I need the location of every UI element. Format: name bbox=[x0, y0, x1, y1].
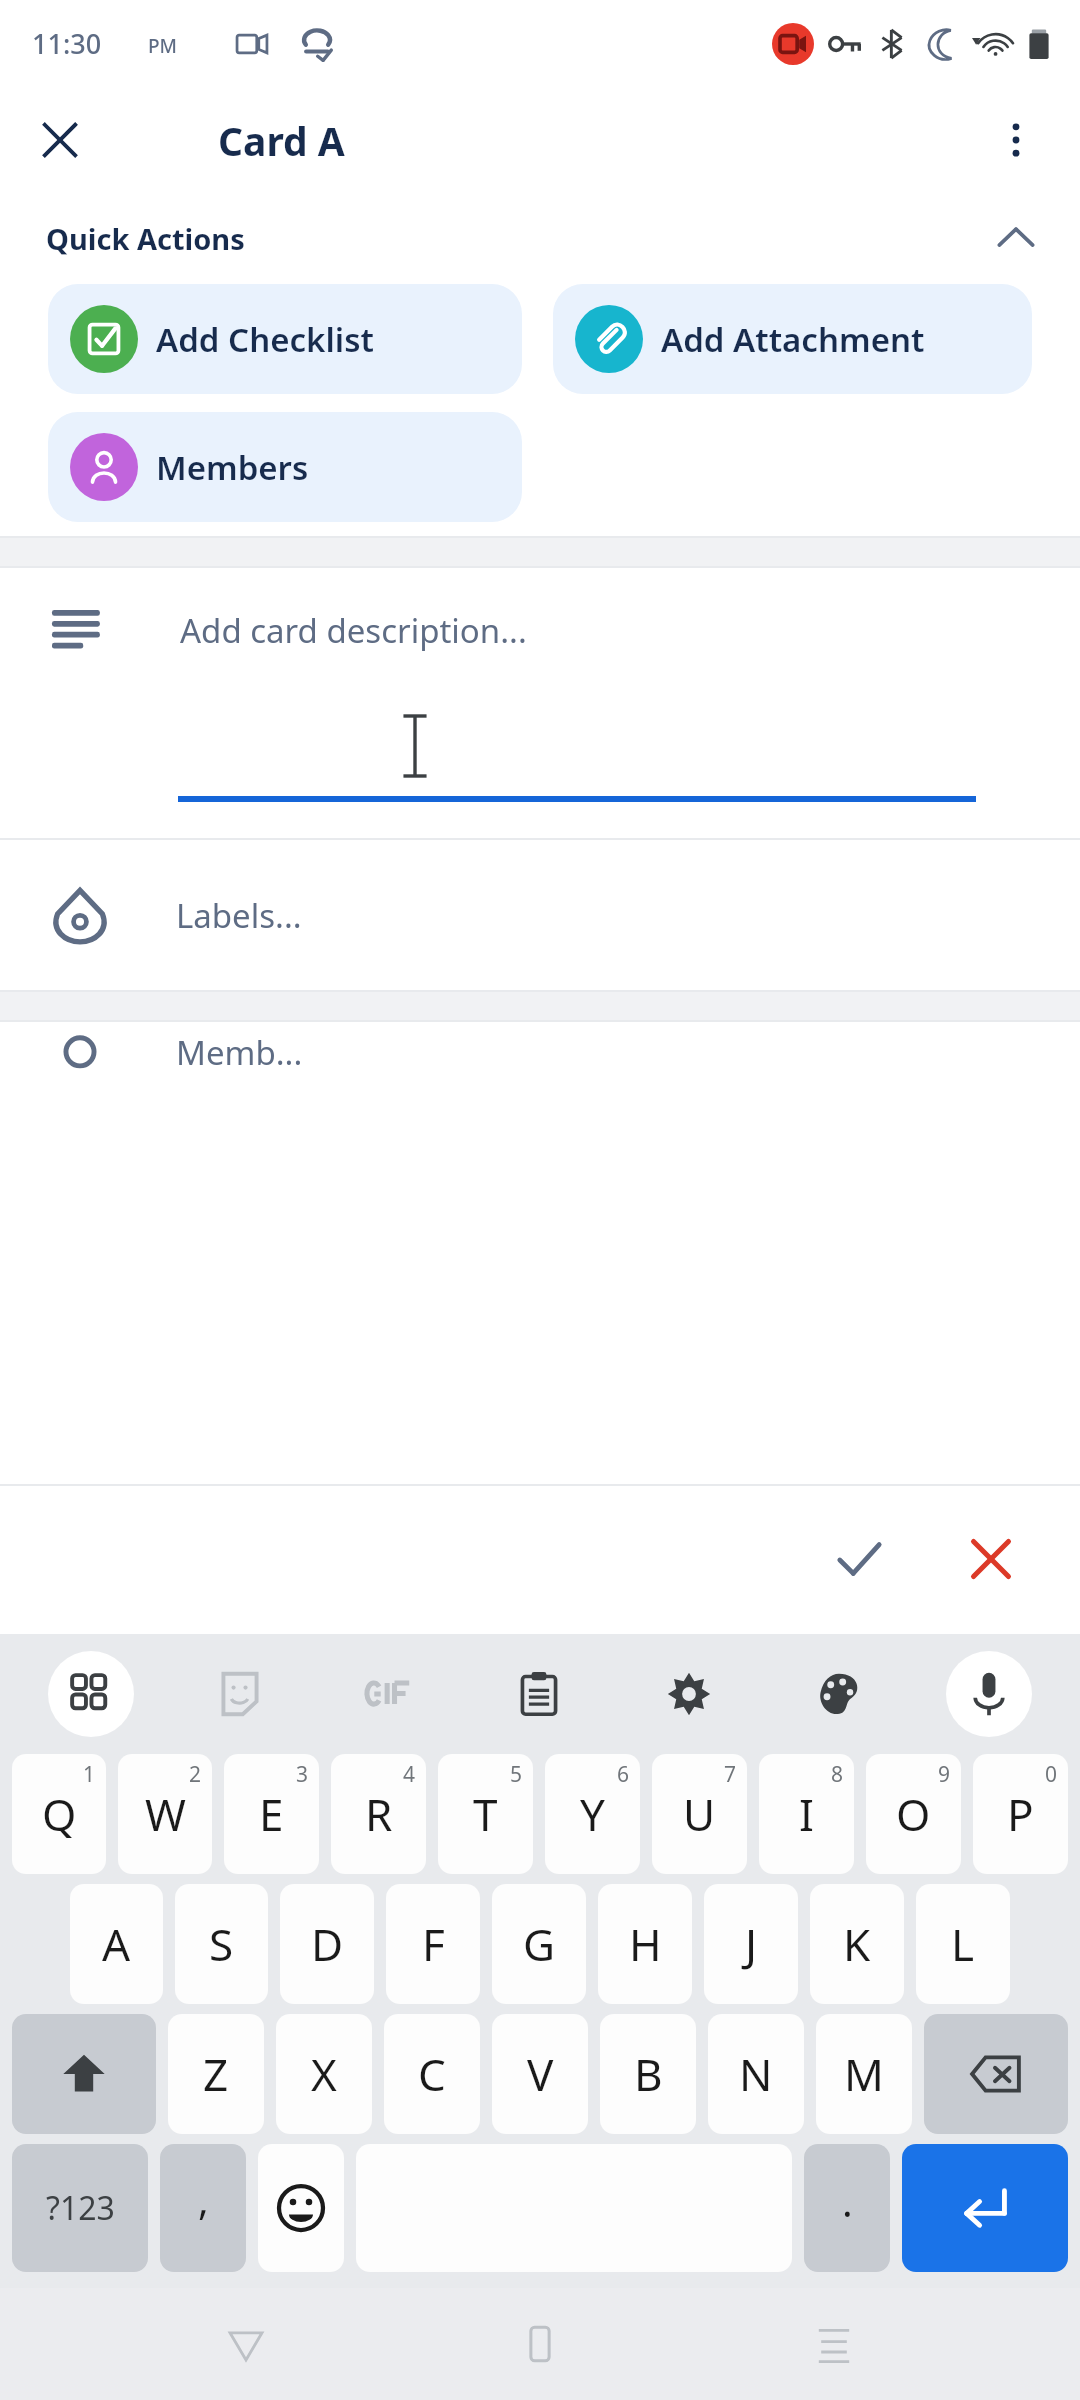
staticText: PM bbox=[148, 33, 178, 59]
staticText: Card A bbox=[218, 114, 345, 167]
button[interactable]: F bbox=[386, 1884, 480, 2004]
button[interactable]: Settings bbox=[646, 1651, 732, 1737]
button[interactable]: N bbox=[708, 2014, 804, 2134]
button[interactable]: K bbox=[810, 1884, 904, 2004]
button[interactable]: Home bbox=[492, 2296, 588, 2392]
button[interactable]: Recents bbox=[786, 2296, 882, 2392]
staticText: 3 bbox=[296, 1760, 309, 1789]
button[interactable]: Clipboard bbox=[496, 1651, 582, 1737]
staticText: 5 bbox=[510, 1760, 523, 1789]
button[interactable]: Collapse quick actions bbox=[980, 202, 1052, 274]
button[interactable]: Add Checklist bbox=[48, 284, 522, 394]
button[interactable]: GIF bbox=[346, 1651, 432, 1737]
staticText: 0 bbox=[1045, 1760, 1058, 1789]
button[interactable]: Theme bbox=[796, 1651, 882, 1737]
button[interactable]: . bbox=[804, 2144, 890, 2272]
staticText: N bbox=[739, 2044, 773, 2104]
staticText: O bbox=[896, 1784, 931, 1844]
staticText: 1 bbox=[83, 1760, 96, 1789]
staticText: Add card description... bbox=[180, 608, 527, 653]
button[interactable]: C bbox=[384, 2014, 480, 2134]
staticText: A bbox=[102, 1914, 131, 1974]
staticText: 2 bbox=[189, 1760, 202, 1789]
button[interactable]: Add Attachment bbox=[553, 284, 1032, 394]
button[interactable]: G bbox=[492, 1884, 586, 2004]
button[interactable]: Enter bbox=[902, 2144, 1068, 2272]
button[interactable]: Q bbox=[12, 1754, 106, 1874]
button[interactable]: M bbox=[816, 2014, 912, 2134]
staticText: Add Checklist bbox=[156, 317, 374, 362]
button[interactable]: W bbox=[118, 1754, 212, 1874]
staticText: F bbox=[422, 1914, 445, 1974]
button[interactable]: Memb... bbox=[0, 1022, 1080, 1082]
button[interactable]: E bbox=[224, 1754, 319, 1874]
staticText: U bbox=[683, 1784, 716, 1844]
staticText: T bbox=[473, 1784, 498, 1844]
button[interactable]: Labels... bbox=[0, 840, 1080, 990]
staticText: K bbox=[843, 1914, 871, 1974]
button[interactable]: Back bbox=[198, 2296, 294, 2392]
staticText: E bbox=[259, 1784, 284, 1844]
staticText: M bbox=[844, 2044, 884, 2104]
staticText: Z bbox=[203, 2044, 229, 2104]
staticText: J bbox=[745, 1914, 758, 1974]
staticText: ?123 bbox=[46, 2186, 115, 2230]
staticText: V bbox=[527, 2044, 554, 2104]
button[interactable]: J bbox=[704, 1884, 798, 2004]
staticText: B bbox=[634, 2044, 663, 2104]
button[interactable]: X bbox=[276, 2014, 372, 2134]
staticText: 4 bbox=[403, 1760, 416, 1789]
button[interactable]: Cancel bbox=[948, 1516, 1034, 1602]
staticText: L bbox=[951, 1914, 975, 1974]
button[interactable]: L bbox=[916, 1884, 1010, 2004]
staticText: 9 bbox=[938, 1760, 951, 1789]
button[interactable]: Backspace bbox=[924, 2014, 1068, 2134]
staticText: P bbox=[1007, 1784, 1034, 1844]
button[interactable]: P bbox=[973, 1754, 1068, 1874]
button[interactable]: Y bbox=[545, 1754, 640, 1874]
button[interactable]: Members bbox=[48, 412, 522, 522]
button[interactable]: Add card description... bbox=[0, 568, 1080, 838]
button[interactable]: Emoji bbox=[258, 2144, 344, 2272]
staticText: R bbox=[365, 1784, 393, 1844]
staticText: X bbox=[311, 2044, 337, 2104]
staticText: 6 bbox=[617, 1760, 630, 1789]
staticText: I bbox=[799, 1784, 814, 1844]
staticText: C bbox=[418, 2044, 446, 2104]
button[interactable]: R bbox=[331, 1754, 426, 1874]
staticText: D bbox=[311, 1914, 344, 1974]
button[interactable]: Stickers bbox=[197, 1651, 283, 1737]
staticText: Q bbox=[42, 1784, 77, 1844]
staticText: Quick Actions bbox=[46, 219, 245, 258]
button[interactable]: V bbox=[492, 2014, 588, 2134]
button[interactable]: D bbox=[280, 1884, 374, 2004]
staticText: S bbox=[209, 1914, 234, 1974]
button[interactable]: S bbox=[175, 1884, 268, 2004]
button[interactable]: More options bbox=[978, 102, 1054, 178]
button[interactable]: ?123 bbox=[12, 2144, 148, 2272]
button[interactable]: Voice input bbox=[946, 1651, 1032, 1737]
staticText: 11:30 bbox=[32, 25, 102, 62]
button[interactable]: Apps bbox=[48, 1651, 134, 1737]
staticText: 8 bbox=[831, 1760, 844, 1789]
button[interactable]: H bbox=[598, 1884, 692, 2004]
button[interactable]: Close bbox=[22, 102, 98, 178]
button[interactable]: Shift bbox=[12, 2014, 156, 2134]
staticText: Members bbox=[156, 445, 309, 490]
button[interactable]: B bbox=[600, 2014, 696, 2134]
button[interactable]: , bbox=[160, 2144, 246, 2272]
staticText: , bbox=[198, 2172, 209, 2226]
button[interactable]: T bbox=[438, 1754, 533, 1874]
button[interactable]: U bbox=[652, 1754, 747, 1874]
staticText: Y bbox=[580, 1784, 605, 1844]
button[interactable]: Confirm bbox=[816, 1516, 902, 1602]
staticText: . bbox=[842, 2174, 853, 2228]
staticText: Memb... bbox=[176, 1030, 303, 1075]
staticText: G bbox=[523, 1914, 556, 1974]
button[interactable]: O bbox=[866, 1754, 961, 1874]
staticText: Labels... bbox=[176, 893, 302, 938]
button[interactable]: Z bbox=[168, 2014, 264, 2134]
button[interactable]: A bbox=[70, 1884, 163, 2004]
button[interactable]: I bbox=[759, 1754, 854, 1874]
